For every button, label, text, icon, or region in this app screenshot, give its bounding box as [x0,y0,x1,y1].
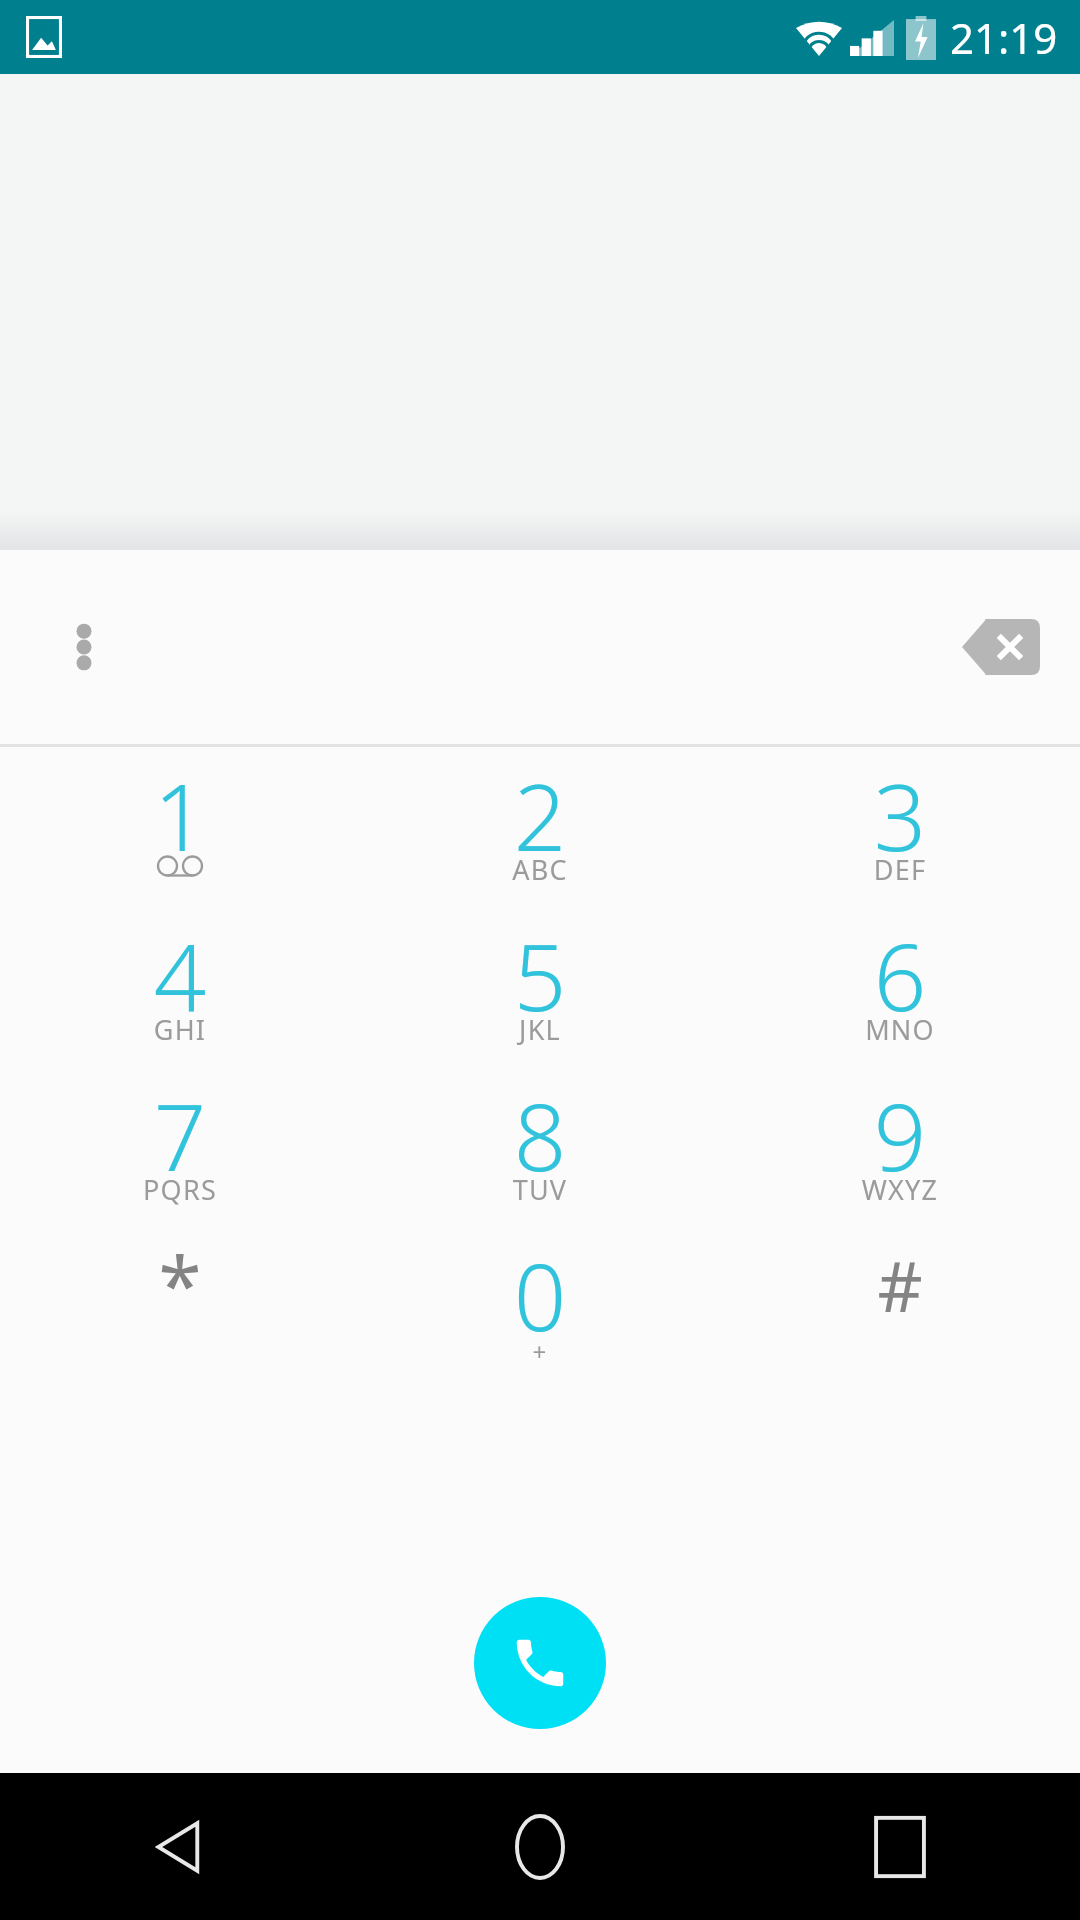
button[interactable]: 6 [720,907,1080,1067]
staticText: 2 [360,753,720,878]
button[interactable]: 3 [720,747,1080,907]
button[interactable]: 9 [720,1067,1080,1227]
button[interactable]: 2 [360,747,720,907]
staticText: PQRS [0,1171,360,1208]
button[interactable]: 8 [360,1067,720,1227]
staticText: + [360,1335,720,1368]
staticText: WXYZ [720,1171,1080,1208]
button[interactable]: 1 [0,747,360,907]
staticText: 5 [360,913,720,1038]
staticText: 9 [720,1073,1080,1198]
staticText: 6 [720,913,1080,1038]
button[interactable]: Recent apps [720,1773,1080,1920]
staticText: ABC [360,851,720,888]
staticText: TUV [360,1171,720,1208]
button[interactable]: # [720,1227,1080,1387]
staticText: # [720,1237,1080,1332]
staticText: 21:19 [950,9,1058,66]
button[interactable]: More options [36,599,132,695]
button[interactable]: 4 [0,907,360,1067]
button[interactable]: 5 [360,907,720,1067]
button[interactable]: Home [360,1773,720,1920]
button[interactable]: * [0,1227,360,1387]
staticText: 4 [0,913,360,1038]
staticText: GHI [0,1011,360,1048]
staticText: * [0,1231,360,1337]
button[interactable]: Call [474,1597,606,1729]
staticText: 7 [0,1073,360,1198]
staticText: DEF [720,851,1080,888]
button[interactable]: Backspace [946,592,1056,702]
staticText: 3 [720,753,1080,878]
button[interactable]: 7 [0,1067,360,1227]
button[interactable]: Back [0,1773,360,1920]
staticText: MNO [720,1011,1080,1048]
staticText: 0 [360,1233,720,1358]
staticText: 8 [360,1073,720,1198]
staticText: JKL [360,1011,720,1048]
staticText: 1 [0,753,360,878]
button[interactable]: 0 [360,1227,720,1387]
